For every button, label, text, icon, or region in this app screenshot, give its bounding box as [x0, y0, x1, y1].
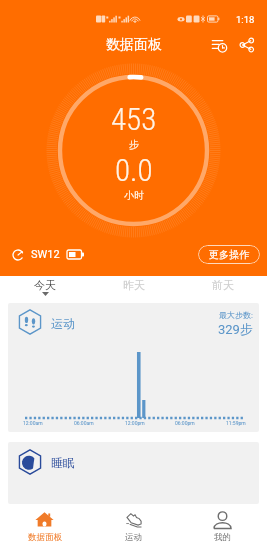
button[interactable]: 运动 [89, 504, 178, 550]
staticText: 数据面板 [28, 532, 62, 543]
staticText: 1:18 [236, 14, 255, 25]
staticText: 睡眠 [51, 455, 75, 470]
staticText: 步 [129, 138, 139, 151]
button[interactable]: 今天 [0, 276, 89, 303]
staticText: 运动 [51, 316, 75, 331]
staticText: 06:00am [74, 420, 94, 426]
staticText: 运动 [125, 532, 142, 543]
button[interactable]: 数据面板 [0, 504, 89, 550]
staticText: 数据面板 [106, 36, 162, 54]
button[interactable]: Share [235, 33, 259, 57]
button[interactable]: 更多操作 [198, 245, 260, 264]
button[interactable]: 我的 [178, 504, 267, 550]
staticText: 0.0 [115, 152, 153, 188]
button[interactable]: 昨天 [89, 276, 178, 303]
staticText: 小时 [124, 189, 144, 202]
staticText: 12:00pm [125, 420, 145, 426]
staticText: 我的 [214, 532, 231, 543]
staticText: 12:00am [23, 420, 43, 426]
staticText: 昨天 [123, 278, 145, 292]
staticText: 今天 [34, 278, 56, 292]
staticText: SW12 [31, 248, 60, 261]
staticText: 更多操作 [209, 248, 249, 261]
button[interactable]: 前天 [178, 276, 267, 303]
button[interactable]: History [207, 33, 231, 57]
staticText: 06:00pm [175, 420, 195, 426]
staticText: 前天 [212, 278, 234, 292]
staticText: 11:59pm [226, 420, 246, 426]
button[interactable]: 睡眠 [8, 442, 259, 504]
staticText: 453 [111, 101, 157, 137]
button[interactable]: 运动 [8, 303, 259, 432]
staticText: 329步 [218, 321, 253, 337]
staticText: 最大步数: [219, 310, 253, 320]
button[interactable]: Sync [10, 247, 26, 263]
